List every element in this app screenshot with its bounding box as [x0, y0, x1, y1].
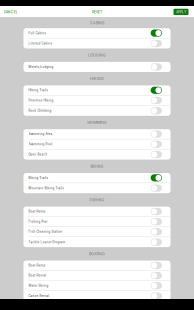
staticText: Swimming Area	[28, 132, 52, 136]
staticText: Rock Climbing	[28, 109, 51, 112]
button[interactable]: Boat Ramp	[23, 207, 170, 217]
button[interactable]: Limited Cabins	[23, 38, 170, 48]
button[interactable]: CANCEL	[0, 8, 21, 16]
staticText: Full Cabins	[28, 31, 46, 35]
staticText: APPLY	[176, 10, 186, 14]
staticText: Boat Rental	[28, 274, 46, 277]
button[interactable]: Water Skiing	[23, 281, 170, 291]
button[interactable]: Full Cabins	[23, 28, 170, 38]
button[interactable]: Swimming Pool	[23, 139, 170, 149]
button[interactable]: Open Beach	[23, 149, 170, 159]
staticText: Motels/Lodging	[28, 65, 53, 69]
staticText: Water Skiing	[28, 284, 48, 287]
staticText: Hiking Trails	[28, 88, 48, 92]
staticText: Swimming Pool	[28, 142, 52, 146]
button[interactable]: Canoe Rental	[23, 291, 170, 301]
button[interactable]: Motels/Lodging	[23, 62, 170, 72]
staticText: HIKING	[90, 76, 104, 81]
button[interactable]: Swimming Area	[23, 129, 170, 139]
staticText: Canoe Rental	[28, 294, 49, 298]
button[interactable]: Rock Climbing	[23, 106, 170, 116]
staticText: Tackle Loaner Program	[28, 240, 65, 244]
staticText: LODGING	[88, 53, 106, 57]
staticText: CABINS	[90, 21, 104, 25]
staticText: Biking Trails	[28, 176, 48, 180]
button[interactable]: Hiking Trails	[23, 85, 170, 95]
button[interactable]: Fishing Pier	[23, 217, 170, 227]
staticText: Boat Ramp	[28, 210, 45, 213]
button[interactable]: Tackle Loaner Program	[23, 237, 170, 247]
staticText: BOATING	[89, 252, 105, 256]
staticText: Mountain Biking Trails	[28, 186, 64, 190]
staticText: CANCEL	[4, 10, 18, 14]
button[interactable]: Mountain Biking Trails	[23, 183, 170, 193]
staticText: Primitive Hiking	[28, 99, 53, 102]
staticText: FISHING	[89, 198, 104, 202]
staticText: BIKING	[90, 164, 103, 168]
button[interactable]: Primitive Hiking	[23, 95, 170, 106]
button[interactable]: Biking Trails	[23, 173, 170, 183]
staticText: SWIMMING	[87, 120, 107, 125]
staticText: Open Beach	[28, 153, 47, 156]
staticText: Boat Ramp	[28, 264, 45, 267]
button[interactable]: APPLY	[173, 9, 194, 15]
staticText: Fishing Pier	[28, 220, 47, 223]
staticText: RESET	[92, 10, 102, 14]
button[interactable]: Boat Ramp	[23, 261, 170, 271]
button[interactable]: Boat Rental	[23, 271, 170, 281]
staticText: Fish Cleaning Station	[28, 230, 62, 233]
staticText: Limited Cabins	[28, 42, 52, 45]
button[interactable]: RESET	[89, 8, 105, 16]
button[interactable]: Fish Cleaning Station	[23, 227, 170, 237]
